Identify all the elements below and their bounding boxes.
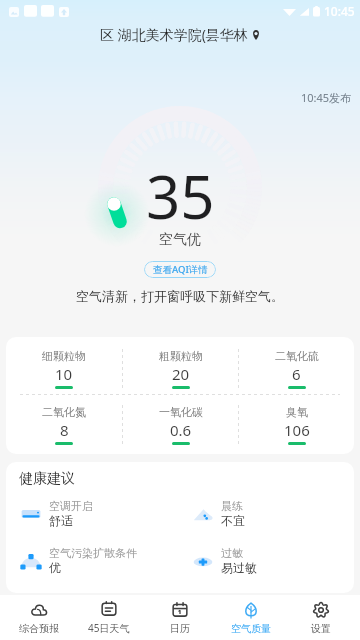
button[interactable]: 45日天气 xyxy=(77,595,141,640)
staticText: 粗颗粒物 xyxy=(159,349,203,363)
button[interactable]: 设置 xyxy=(289,595,353,640)
button[interactable]: 过敏 xyxy=(190,546,354,575)
button[interactable]: 综合预报 xyxy=(7,595,71,640)
button[interactable]: 细颗粒物 xyxy=(6,349,122,389)
staticText: 空气质量 xyxy=(231,622,271,635)
staticText: 查看AQI详情 xyxy=(153,263,208,276)
staticText: 20 xyxy=(172,364,190,384)
button[interactable]: 查看AQI详情 xyxy=(144,261,216,278)
staticText: 臭氧 xyxy=(286,405,308,419)
staticText: 细颗粒物 xyxy=(42,349,86,363)
staticText: 6 xyxy=(292,364,301,384)
staticText: 不宜 xyxy=(221,513,245,528)
staticText: 二氧化氮 xyxy=(42,405,86,419)
staticText: 健康建议 xyxy=(19,470,75,488)
button[interactable]: 空调开启 xyxy=(18,499,178,528)
staticText: 空气优 xyxy=(159,231,201,249)
staticText: 10:45发布 xyxy=(301,90,352,105)
button[interactable]: 日历 xyxy=(148,595,212,640)
staticText: 空调开启 xyxy=(49,499,93,513)
button[interactable]: 臭氧 xyxy=(239,405,354,445)
staticText: 10:45 xyxy=(324,3,355,19)
staticText: 35 xyxy=(146,155,215,237)
staticText: 易过敏 xyxy=(221,560,257,575)
staticText: 优 xyxy=(49,560,61,575)
button[interactable]: 一氧化碳 xyxy=(123,405,238,445)
staticText: 综合预报 xyxy=(19,622,59,635)
button[interactable]: 空气质量 xyxy=(219,595,283,640)
staticText: 过敏 xyxy=(221,546,243,560)
button[interactable]: 晨练 xyxy=(190,499,354,528)
button[interactable]: 二氧化硫 xyxy=(239,349,354,389)
staticText: 设置 xyxy=(311,622,331,635)
staticText: 二氧化硫 xyxy=(275,349,319,363)
staticText: 空气清新，打开窗呼吸下新鲜空气。 xyxy=(76,288,284,304)
staticText: 106 xyxy=(284,420,310,440)
staticText: 45日天气 xyxy=(88,621,130,635)
button[interactable]: 空气污染扩散条件 xyxy=(18,546,178,575)
button[interactable]: 粗颗粒物 xyxy=(123,349,238,389)
staticText: 舒适 xyxy=(49,513,73,528)
staticText: 空气污染扩散条件 xyxy=(49,546,137,560)
staticText: 晨练 xyxy=(221,499,243,513)
staticText: 区 湖北美术学院(昙华林 xyxy=(100,25,248,44)
staticText: 日历 xyxy=(170,622,190,635)
button[interactable]: 二氧化氮 xyxy=(6,405,122,445)
staticText: 一氧化碳 xyxy=(159,405,203,419)
staticText: 0.6 xyxy=(170,420,192,440)
staticText: 10 xyxy=(55,364,73,384)
staticText: 8 xyxy=(60,420,69,440)
button[interactable]: 区 湖北美术学院(昙华林 xyxy=(92,22,268,47)
